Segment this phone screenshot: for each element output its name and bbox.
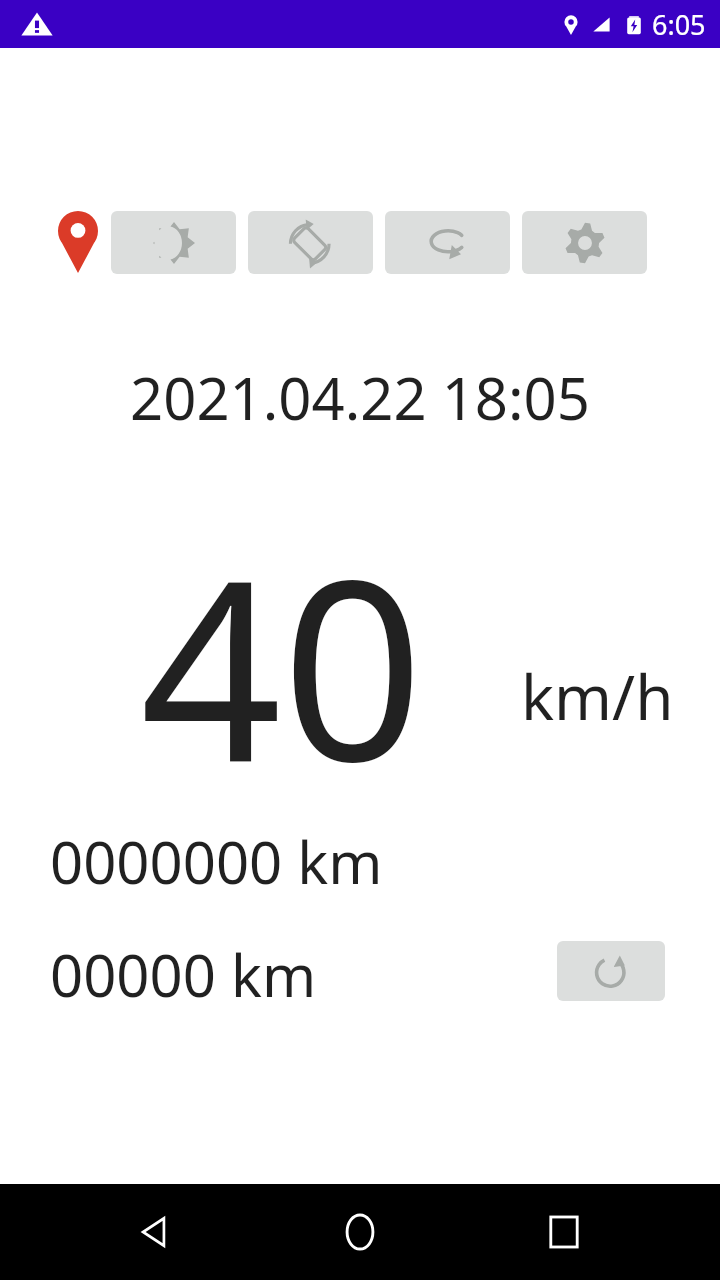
staticText: 0000000 km: [50, 822, 383, 901]
button[interactable]: Night mode: [111, 211, 236, 274]
staticText: 2021.04.22 18:05: [130, 358, 590, 437]
other: GPS location active: [58, 211, 98, 273]
staticText: 40: [140, 496, 424, 834]
staticText: km/h: [521, 654, 674, 738]
button[interactable]: 3D rotation: [385, 211, 510, 274]
button[interactable]: Screen rotation: [248, 211, 373, 274]
button[interactable]: Back: [108, 1184, 204, 1280]
staticText: 6:05: [652, 6, 706, 43]
button[interactable]: Reset trip odometer: [557, 941, 665, 1001]
staticText: 00000 km: [50, 935, 317, 1014]
button[interactable]: Settings: [522, 211, 647, 274]
button[interactable]: Recent apps: [516, 1184, 612, 1280]
button[interactable]: Home: [312, 1184, 408, 1280]
